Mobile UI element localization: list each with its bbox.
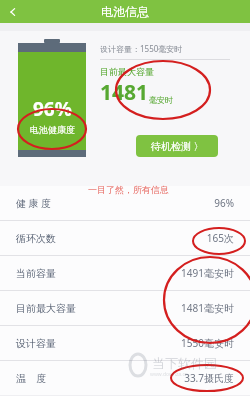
staticText: 电池健康度	[30, 124, 75, 135]
button[interactable]: Back	[0, 0, 26, 23]
staticText: 毫安时	[149, 95, 173, 105]
staticText: 待机检测 〉	[151, 139, 204, 153]
staticText: 1550毫安时	[181, 336, 234, 350]
staticText: 温 度	[16, 371, 47, 385]
button[interactable]: 设计容量	[0, 326, 250, 360]
button[interactable]: 健 康 度	[0, 186, 250, 220]
staticText: 1481毫安时	[181, 301, 234, 315]
staticText: 1491毫安时	[181, 266, 234, 280]
staticText: 健 康 度	[16, 196, 52, 210]
staticText: 165次	[206, 231, 234, 245]
staticText: 电池信息	[101, 4, 149, 19]
staticText: 33.7摄氏度	[184, 371, 234, 385]
button[interactable]: 循环次数	[0, 221, 250, 255]
staticText: 循环次数	[16, 232, 56, 245]
staticText: 一目了然，所有信息	[88, 184, 169, 195]
button[interactable]: 目前最大容量	[0, 291, 250, 325]
staticText: 1481	[100, 78, 149, 107]
staticText: 96%	[33, 96, 72, 122]
staticText: 设计容量：1550毫安时	[100, 43, 183, 54]
staticText: www.downza.cn	[150, 371, 188, 378]
staticText: 目前最大容量	[100, 66, 154, 77]
button[interactable]: 待机检测 〉	[136, 135, 218, 157]
button[interactable]: 温 度	[0, 361, 250, 395]
staticText: 设计容量	[16, 337, 56, 350]
staticText: 目前最大容量	[16, 302, 76, 315]
button[interactable]: 当前容量	[0, 256, 250, 290]
staticText: 当下软件园	[152, 355, 217, 371]
staticText: 当前容量	[16, 267, 56, 280]
staticText: 96%	[214, 196, 234, 210]
